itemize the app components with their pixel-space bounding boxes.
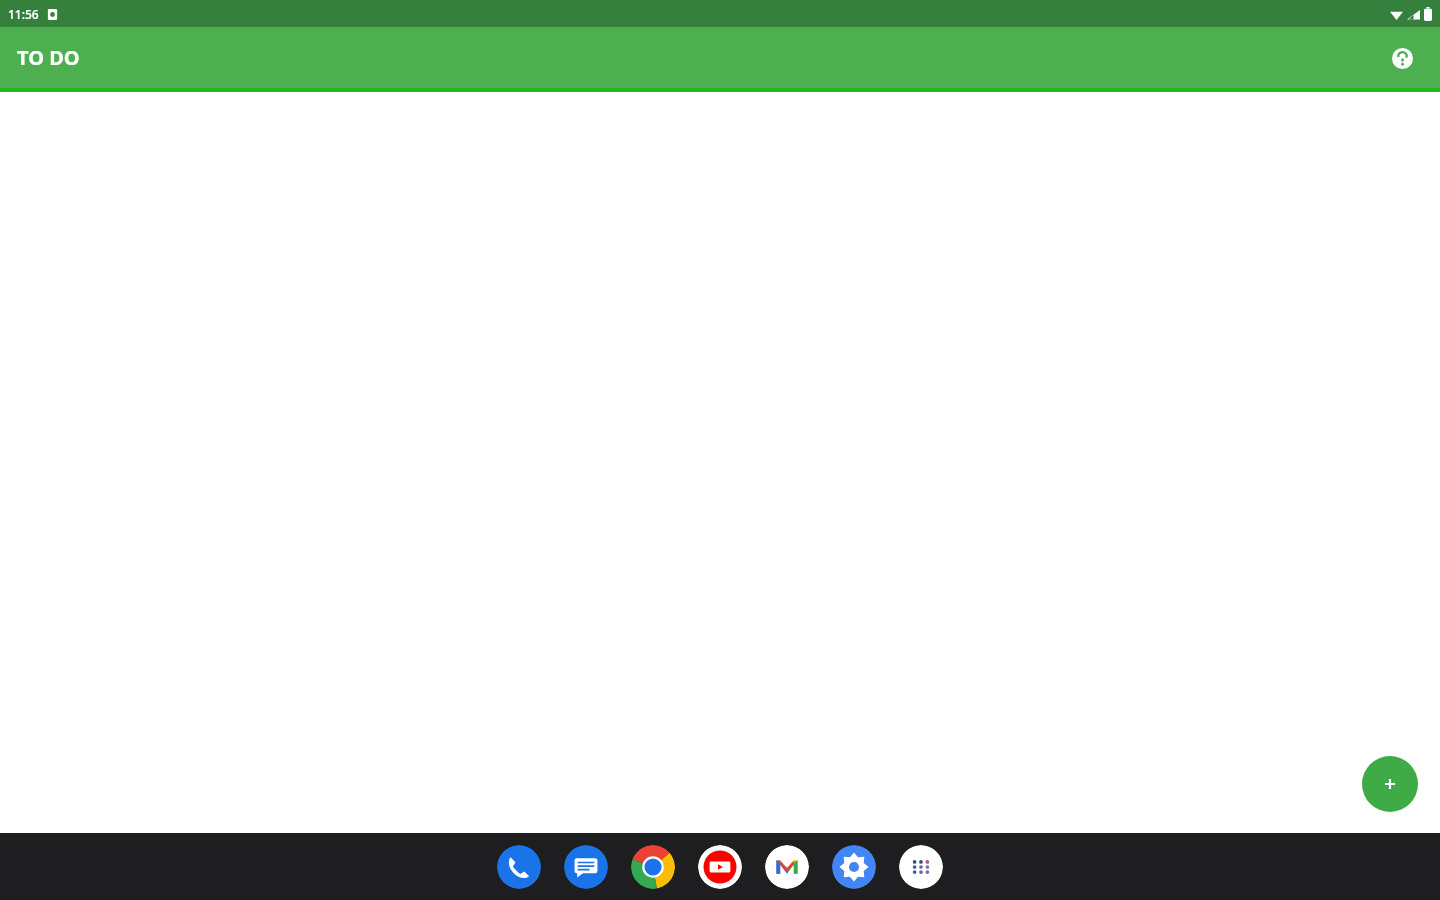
button[interactable]: Settings	[832, 845, 876, 889]
staticText: 11:56	[8, 6, 39, 22]
button[interactable]: Messages	[564, 845, 608, 889]
button[interactable]: Gmail	[765, 845, 809, 889]
button[interactable]: Phone	[497, 845, 541, 889]
button[interactable]: Help	[1384, 40, 1420, 76]
button[interactable]: Add task	[1362, 756, 1418, 812]
button[interactable]: All apps	[899, 845, 943, 889]
button[interactable]: Chrome	[631, 845, 675, 889]
staticText: TO DO	[17, 44, 80, 71]
button[interactable]: YouTube	[698, 845, 742, 889]
